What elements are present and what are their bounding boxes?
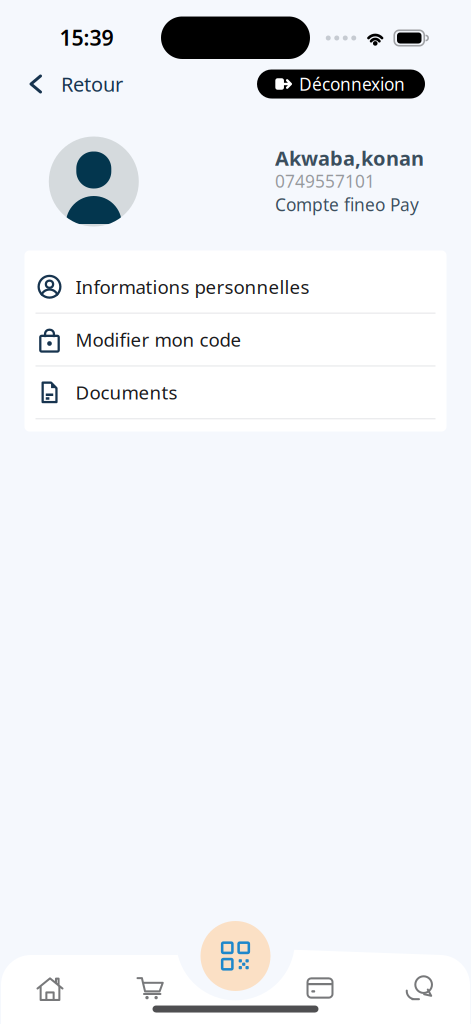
- staticText: Documents: [75, 380, 177, 405]
- button[interactable]: Déconnexion: [257, 69, 425, 98]
- staticText: Informations personnelles: [75, 274, 309, 299]
- button[interactable]: Messages: [377, 962, 463, 1014]
- staticText: 0749557101: [275, 169, 375, 192]
- staticText: Modifier mon code: [75, 327, 241, 352]
- button[interactable]: Modifier mon code: [24, 314, 446, 367]
- staticText: Déconnexion: [299, 72, 405, 95]
- button[interactable]: Accueil: [7, 962, 93, 1014]
- button[interactable]: Panier: [107, 962, 193, 1014]
- button[interactable]: Informations personnelles: [24, 261, 446, 314]
- button[interactable]: Carte: [277, 962, 363, 1014]
- staticText: Akwaba,konan: [275, 145, 424, 171]
- button[interactable]: QR Code: [200, 921, 270, 991]
- staticText: 15:39: [59, 23, 113, 52]
- staticText: Compte fineo Pay: [275, 193, 419, 216]
- button[interactable]: Documents: [24, 367, 446, 419]
- staticText: Retour: [61, 71, 123, 97]
- button[interactable]: Retour: [0, 67, 135, 101]
